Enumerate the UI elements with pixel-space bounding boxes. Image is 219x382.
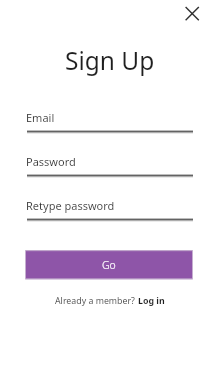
staticText: Already a member?	[55, 295, 138, 307]
button[interactable]: Close	[181, 2, 204, 25]
staticText: Log in	[138, 295, 165, 307]
staticText: Sign Up	[65, 44, 155, 77]
staticText: Go	[102, 258, 116, 272]
staticText: Retype password	[26, 198, 115, 213]
button[interactable]: Go	[25, 250, 193, 280]
staticText: Email	[26, 110, 55, 125]
staticText: Password	[26, 154, 76, 169]
button[interactable]: Log in	[138, 295, 165, 307]
